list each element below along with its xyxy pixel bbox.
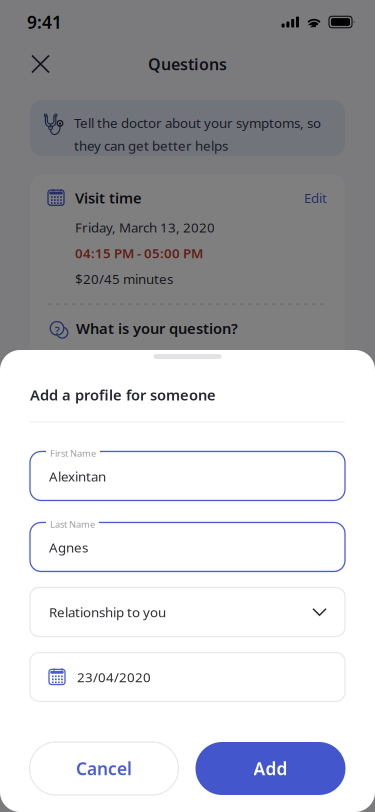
staticText: Friday, March 13, 2020 <box>75 218 215 236</box>
staticText: they can get better helps <box>74 137 228 154</box>
staticText: 9:41 <box>27 10 62 33</box>
staticText: 04:15 PM - 05:00 PM <box>75 244 203 262</box>
staticText: Visit time <box>75 188 142 207</box>
staticText: $20/45 minutes <box>75 270 173 288</box>
staticText: Relationship to you <box>49 603 166 621</box>
button[interactable]: 23/04/2020 <box>30 652 345 701</box>
staticText: ? <box>55 323 60 338</box>
staticText: Alexintan <box>49 467 106 485</box>
staticText: Cancel <box>76 757 132 780</box>
staticText: First Name <box>50 447 96 459</box>
staticText: Add a profile for someone <box>30 385 216 404</box>
staticText: Add <box>253 757 287 780</box>
staticText: Edit <box>304 189 327 207</box>
staticText: What is your question? <box>76 319 238 338</box>
staticText: Questions <box>148 53 227 75</box>
button[interactable]: Close <box>25 48 56 79</box>
button[interactable]: Add <box>195 742 345 795</box>
button[interactable]: Relationship to you <box>30 587 345 636</box>
staticText: Tell the doctor about your symptoms, so <box>74 114 321 132</box>
button[interactable]: Cancel <box>29 742 178 795</box>
staticText: Agnes <box>49 538 88 556</box>
staticText: Last Name <box>50 518 95 530</box>
staticText: 23/04/2020 <box>77 668 151 686</box>
